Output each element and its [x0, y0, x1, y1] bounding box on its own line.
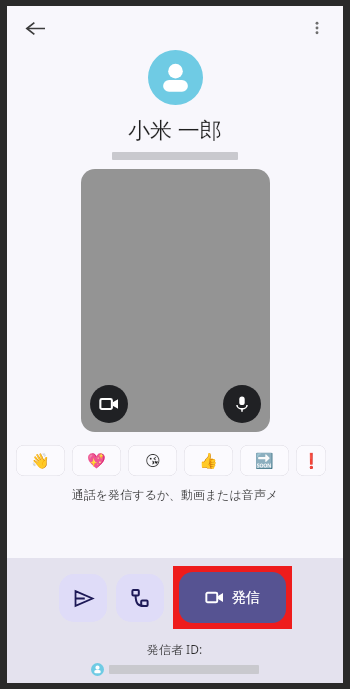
button[interactable]: Send message: [59, 574, 107, 622]
staticText: 😘: [145, 452, 161, 469]
button[interactable]: Toggle camera: [90, 385, 128, 423]
button[interactable]: More options: [301, 12, 333, 44]
staticText: 発信者 ID:: [147, 641, 203, 657]
button[interactable]: Toggle microphone: [223, 385, 261, 423]
button[interactable]: 👍: [184, 445, 233, 476]
staticText: 💖: [87, 452, 106, 470]
staticText: 発信: [232, 589, 260, 607]
button[interactable]: 🔜: [240, 445, 289, 476]
button[interactable]: 👋: [16, 445, 65, 476]
staticText: ❗: [302, 452, 321, 470]
staticText: 通話を発信するか、動画または音声メ: [7, 487, 343, 502]
button[interactable]: ❗: [296, 445, 326, 476]
button[interactable]: 😘: [128, 445, 177, 476]
staticText: 👍: [199, 452, 218, 470]
button[interactable]: 発信: [179, 572, 286, 623]
button[interactable]: 💖: [72, 445, 121, 476]
staticText: 小米 一郎: [128, 114, 222, 144]
staticText: 👋: [31, 452, 50, 470]
button[interactable]: Back: [18, 11, 52, 45]
button[interactable]: Voice call: [116, 574, 164, 622]
staticText: 🔜: [255, 452, 274, 470]
